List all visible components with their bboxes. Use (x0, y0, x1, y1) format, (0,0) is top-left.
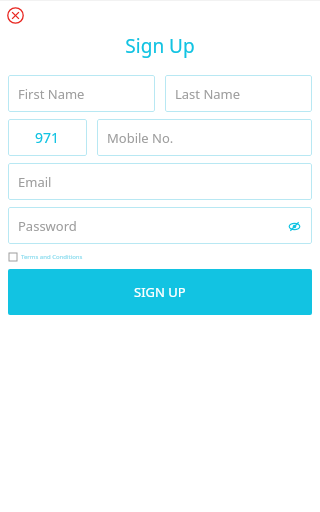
staticText: Password (18, 217, 77, 235)
button[interactable]: 971 (8, 119, 87, 156)
button[interactable]: SIGN UP (8, 269, 312, 315)
button[interactable]: Last Name (165, 75, 312, 112)
staticText: SIGN UP (134, 283, 186, 301)
button[interactable]: First Name (8, 75, 155, 112)
staticText: Last Name (175, 85, 241, 103)
button[interactable]: Terms and Conditions (9, 253, 83, 261)
staticText: Sign Up (0, 33, 320, 59)
button[interactable]: Password (8, 207, 312, 244)
staticText: Email (18, 173, 52, 191)
button[interactable]: Show password (286, 218, 302, 234)
staticText: Terms and Conditions (21, 253, 83, 261)
staticText: Mobile No. (107, 129, 174, 147)
staticText: 971 (35, 128, 60, 147)
button[interactable]: Mobile No. (97, 119, 312, 156)
staticText: First Name (18, 85, 85, 103)
button[interactable]: Close (5, 5, 25, 25)
button[interactable]: Email (8, 163, 312, 200)
